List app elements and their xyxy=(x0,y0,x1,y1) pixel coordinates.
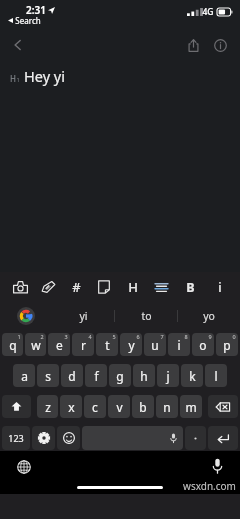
button[interactable]: Dictation xyxy=(204,453,230,479)
staticText: m xyxy=(185,399,197,415)
staticText: 9 xyxy=(208,333,212,340)
button[interactable]: to xyxy=(115,302,177,330)
button[interactable]: Italic xyxy=(205,272,234,302)
staticText: 7 xyxy=(160,333,164,340)
staticText: 123 xyxy=(8,432,24,444)
staticText: 1 xyxy=(17,333,21,340)
button[interactable]: k xyxy=(181,364,203,387)
button[interactable]: Backspace xyxy=(208,395,238,418)
button[interactable]: m xyxy=(180,395,202,418)
staticText: 3 xyxy=(64,333,68,340)
staticText: c xyxy=(92,399,98,415)
staticText: y xyxy=(128,337,135,353)
staticText: i xyxy=(218,279,222,296)
staticText: 2:31 xyxy=(26,3,46,17)
staticText: o xyxy=(199,337,207,353)
button[interactable]: c xyxy=(84,395,106,418)
button[interactable]: Info xyxy=(208,33,232,57)
staticText: 4G xyxy=(202,6,214,18)
staticText: Hey yi xyxy=(24,66,65,86)
staticText: wsxdn.com xyxy=(183,479,236,493)
button[interactable]: Note xyxy=(90,272,118,302)
staticText: z xyxy=(45,399,51,415)
staticText: 2 xyxy=(40,333,44,340)
button[interactable]: 123 xyxy=(2,426,30,450)
staticText: b xyxy=(139,399,147,415)
staticText: v xyxy=(116,399,123,415)
button[interactable]: j xyxy=(157,364,179,387)
button[interactable]: p xyxy=(216,333,238,356)
button[interactable]: n xyxy=(156,395,178,418)
staticText: yi xyxy=(79,309,88,323)
button[interactable]: g xyxy=(109,364,131,387)
staticText: u xyxy=(151,337,159,353)
button[interactable]: Heading xyxy=(118,272,147,302)
button[interactable]: s xyxy=(37,364,59,387)
staticText: to xyxy=(141,309,152,323)
button[interactable]: Change keyboard xyxy=(12,455,36,479)
staticText: t xyxy=(105,337,110,353)
button[interactable]: x xyxy=(60,395,82,418)
button[interactable]: Bold xyxy=(176,272,205,302)
button[interactable]: d xyxy=(61,364,83,387)
staticText: e xyxy=(56,337,63,353)
staticText: g xyxy=(116,368,124,384)
staticText: i xyxy=(177,337,181,353)
staticText: 5 xyxy=(112,333,116,340)
button[interactable] xyxy=(185,426,206,450)
staticText: s xyxy=(45,368,51,384)
button[interactable]: q xyxy=(2,333,23,356)
staticText: h xyxy=(140,368,148,384)
button[interactable]: v xyxy=(108,395,130,418)
staticText: j xyxy=(166,368,170,384)
button[interactable]: Shift xyxy=(2,395,31,418)
staticText: H xyxy=(10,73,16,84)
button[interactable]: yi xyxy=(52,302,114,330)
button[interactable]: b xyxy=(132,395,154,418)
staticText: 1 xyxy=(16,76,20,83)
button[interactable]: Camera xyxy=(6,272,34,302)
button[interactable]: List xyxy=(147,272,176,302)
staticText: yo xyxy=(203,309,215,323)
staticText: a xyxy=(21,368,28,384)
button[interactable]: Share xyxy=(181,33,205,57)
button[interactable]: Back xyxy=(6,33,30,57)
button[interactable]: Tag xyxy=(62,272,90,302)
button[interactable]: z xyxy=(37,395,58,418)
button[interactable]: e xyxy=(48,333,70,356)
staticText: Search xyxy=(15,15,41,26)
button[interactable]: Settings xyxy=(32,426,55,450)
button[interactable]: u xyxy=(144,333,166,356)
staticText: d xyxy=(68,368,76,384)
staticText: r xyxy=(81,337,86,353)
staticText: k xyxy=(189,368,196,384)
staticText: l xyxy=(214,368,218,384)
staticText: 6 xyxy=(136,333,140,340)
staticText: x xyxy=(68,399,75,415)
button[interactable]: h xyxy=(133,364,155,387)
staticText: n xyxy=(163,399,171,415)
staticText: q xyxy=(9,337,17,353)
button[interactable]: Space xyxy=(82,426,183,450)
button[interactable]: Markup xyxy=(34,272,62,302)
staticText: 8 xyxy=(184,333,188,340)
button[interactable]: Google xyxy=(0,302,52,330)
button[interactable]: Return xyxy=(208,426,238,450)
button[interactable]: l xyxy=(205,364,227,387)
staticText: # xyxy=(72,278,81,296)
button[interactable]: i xyxy=(168,333,190,356)
button[interactable]: t xyxy=(96,333,118,356)
button[interactable]: Emoji xyxy=(57,426,80,450)
staticText: H xyxy=(128,278,138,296)
button[interactable]: r xyxy=(72,333,94,356)
button[interactable]: yo xyxy=(178,302,240,330)
button[interactable]: o xyxy=(192,333,214,356)
staticText: f xyxy=(94,368,99,384)
staticText: B xyxy=(186,279,195,296)
staticText: p xyxy=(223,337,231,353)
button[interactable]: f xyxy=(85,364,107,387)
button[interactable]: w xyxy=(25,333,46,356)
button[interactable]: a xyxy=(13,364,35,387)
staticText: 0 xyxy=(232,333,236,340)
button[interactable]: y xyxy=(120,333,142,356)
